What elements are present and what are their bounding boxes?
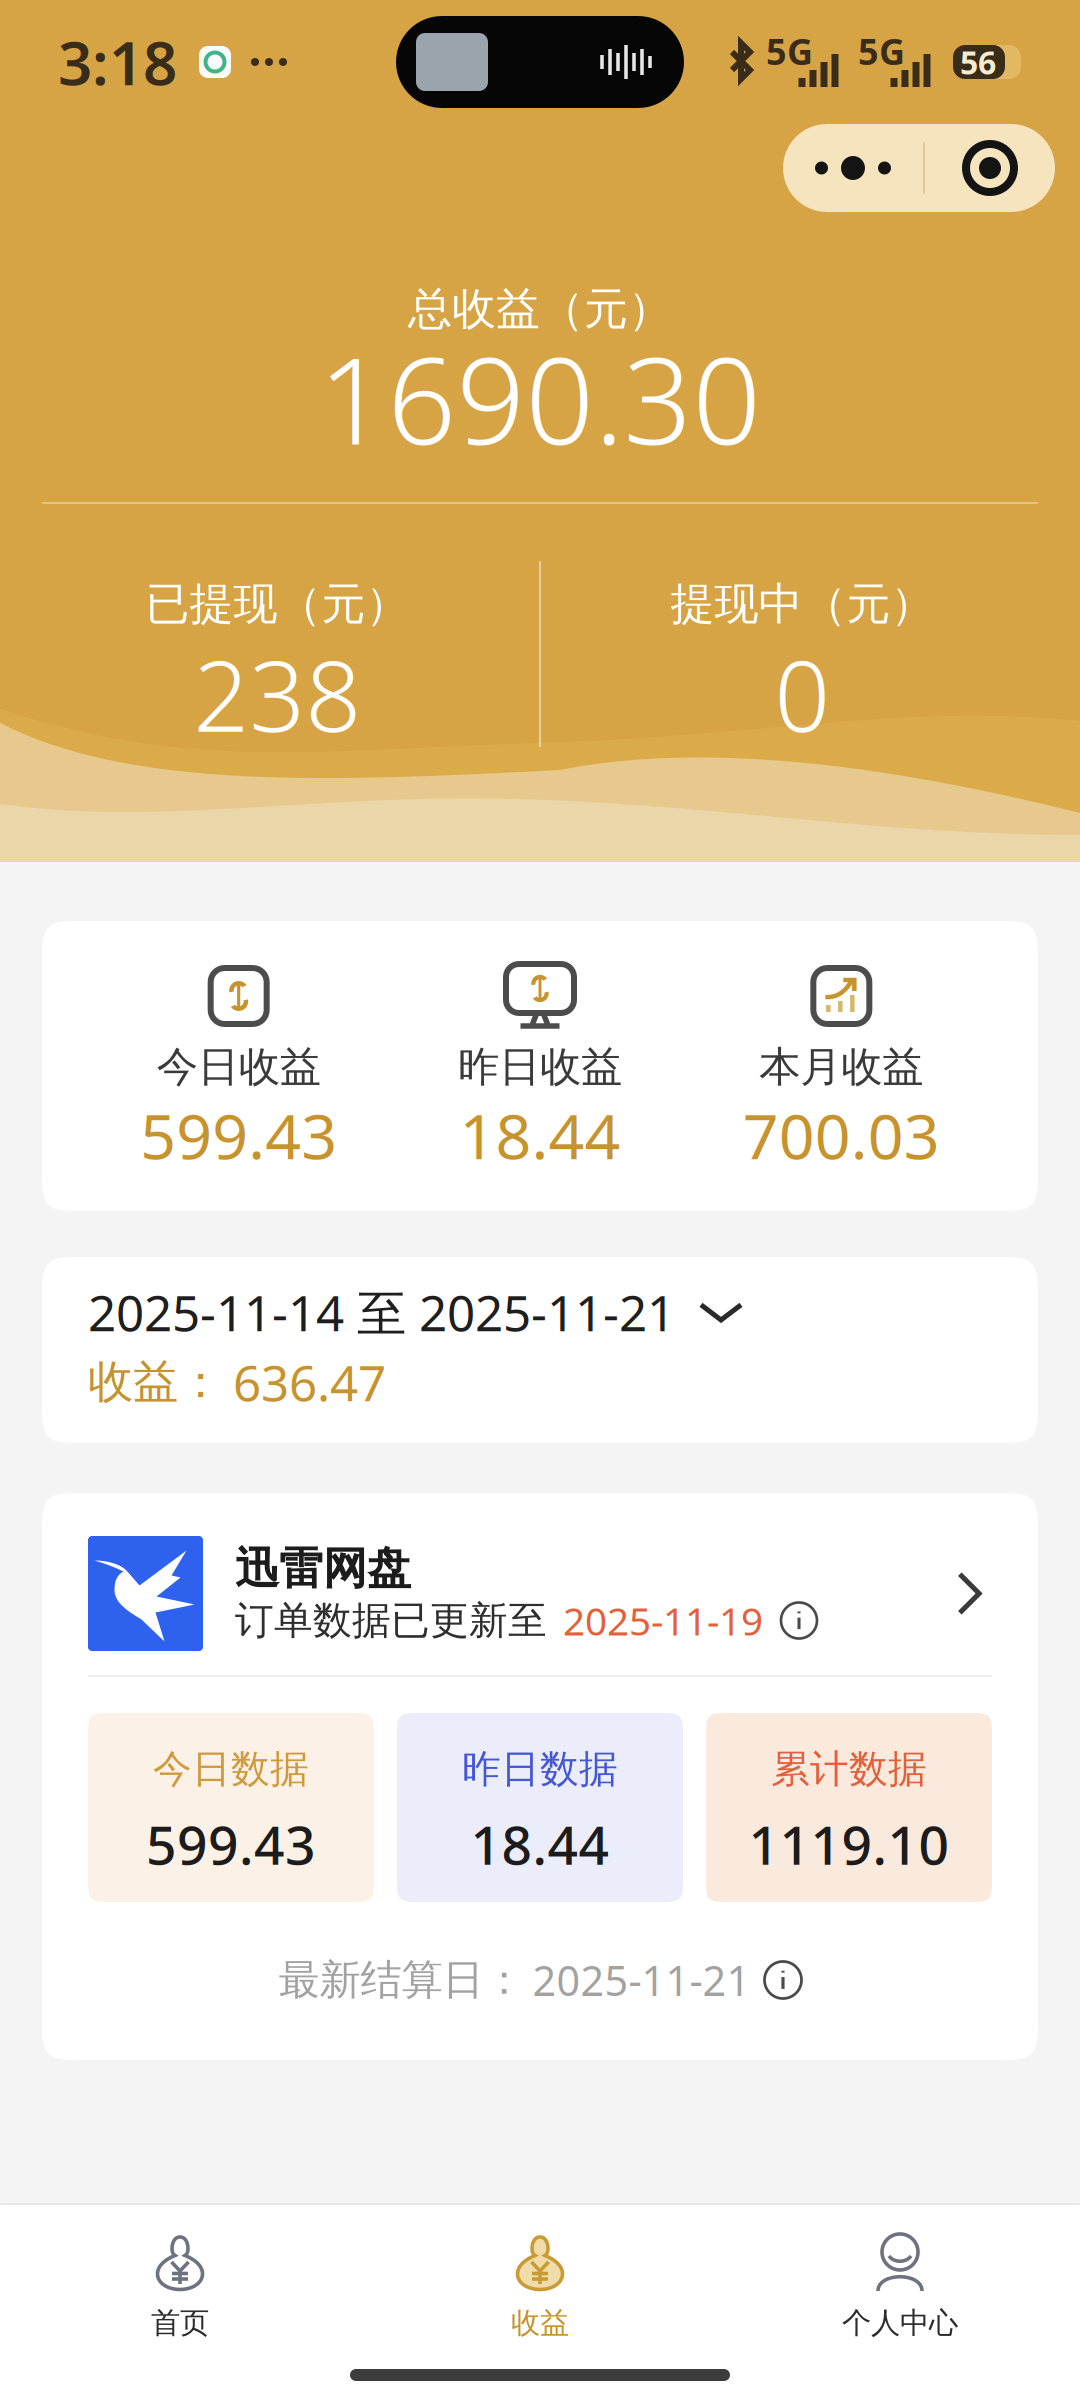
button[interactable]: More options	[783, 124, 923, 212]
staticText: 收益	[511, 2305, 569, 2341]
staticText: 今日数据	[153, 1745, 309, 1793]
staticText: 1119.10	[748, 1809, 949, 1879]
staticText: 5G	[858, 27, 905, 75]
button[interactable]: 本月收益	[691, 921, 992, 1211]
button[interactable]: 昨日收益	[389, 921, 691, 1211]
staticText: 收益：	[88, 1354, 223, 1410]
staticText: 2025-11-19	[563, 1595, 763, 1646]
button[interactable]: 个人中心	[720, 2233, 1080, 2341]
button[interactable]: Close mini program	[925, 124, 1055, 212]
button[interactable]: 今日收益	[88, 921, 389, 1211]
staticText: 238	[193, 629, 361, 759]
staticText: 首页	[151, 2305, 209, 2341]
staticText: 636.47	[233, 1349, 386, 1415]
staticText: 迅雷网盘	[235, 1541, 411, 1595]
staticText: 3:18	[58, 22, 177, 102]
staticText: 2025-11-14 至 2025-11-21	[88, 1279, 675, 1345]
staticText: 2025-11-21	[532, 1953, 750, 2007]
staticText: 总收益（元）	[408, 282, 672, 336]
staticText: 本月收益	[759, 1042, 923, 1092]
button[interactable]: 收益	[360, 2233, 720, 2341]
staticText: 18.44	[470, 1809, 609, 1879]
staticText: 18.44	[459, 1093, 620, 1177]
staticText: 已提现（元）	[145, 577, 409, 631]
staticText: 5G	[766, 27, 813, 75]
staticText: 700.03	[743, 1093, 940, 1177]
button[interactable]: 首页	[0, 2233, 360, 2341]
staticText: 599.43	[140, 1093, 337, 1177]
staticText: 个人中心	[842, 2305, 958, 2341]
staticText: 昨日数据	[462, 1745, 618, 1793]
button[interactable]: 2025-11-14 至 2025-11-21	[0, 1211, 1080, 1443]
staticText: 0	[774, 629, 830, 759]
staticText: 今日收益	[157, 1042, 321, 1092]
staticText: 提现中（元）	[670, 577, 934, 631]
staticText: 昨日收益	[458, 1042, 622, 1092]
button[interactable]: 迅雷网盘	[42, 1493, 1038, 1675]
staticText: 订单数据已更新至	[235, 1597, 547, 1644]
staticText: 1690.30	[318, 318, 761, 478]
staticText: 最新结算日：	[278, 1955, 524, 2005]
staticText: 56	[960, 41, 996, 83]
staticText: 累计数据	[771, 1745, 927, 1793]
staticText: 599.43	[146, 1809, 316, 1879]
